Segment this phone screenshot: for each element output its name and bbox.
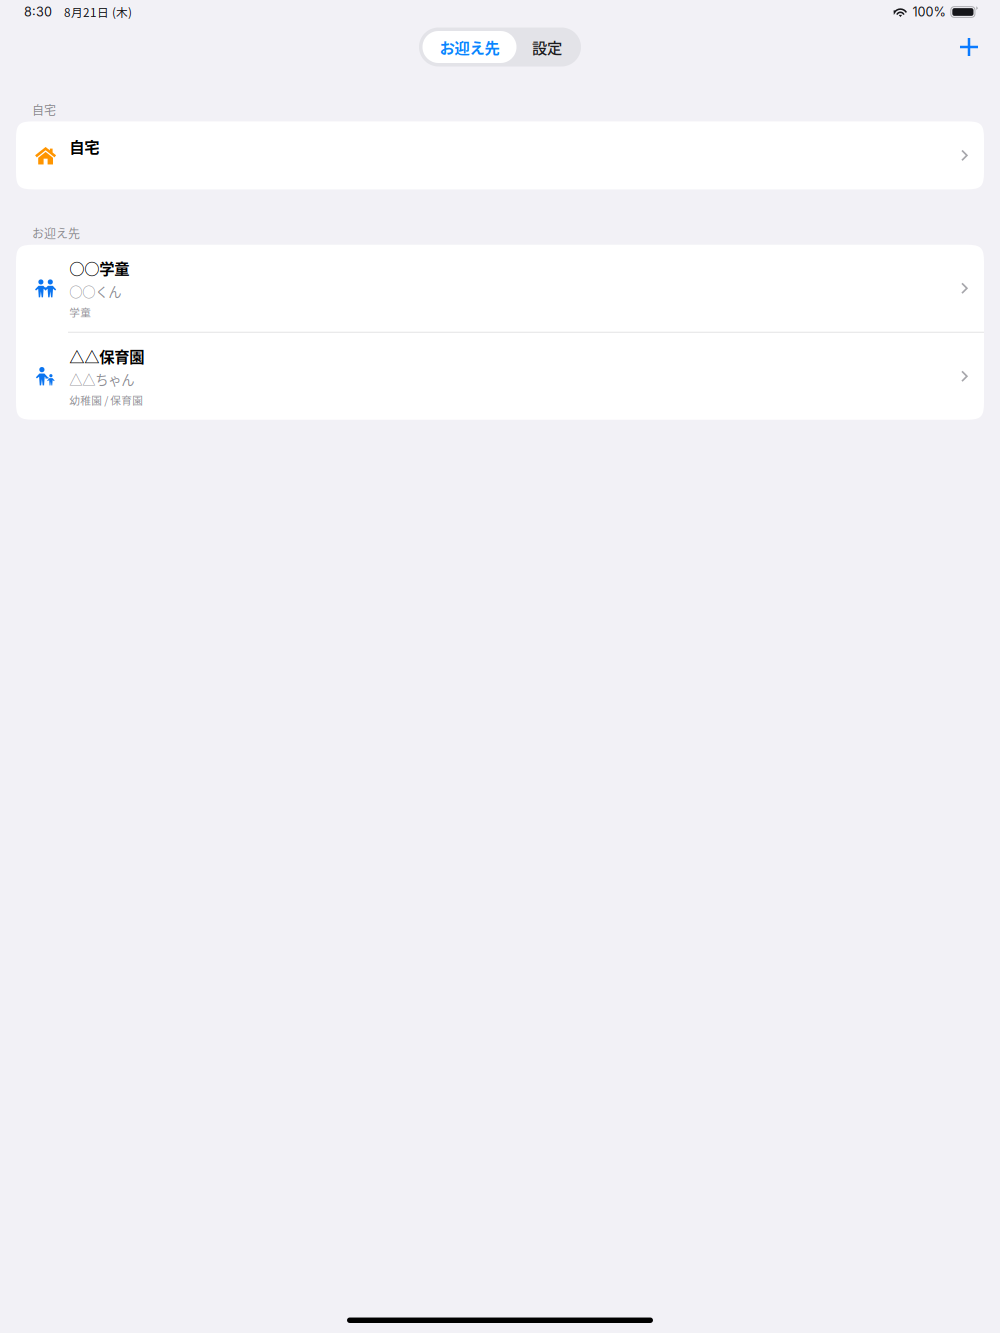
button[interactable]: 追加 (954, 32, 984, 62)
button[interactable]: 自宅 (16, 121, 984, 189)
button[interactable]: ○○学童 (16, 245, 984, 332)
staticText: ○○くん (69, 282, 121, 301)
button[interactable]: お迎え先 (422, 31, 516, 63)
staticText: △△保育園 (69, 345, 144, 367)
staticText: ○○学童 (69, 257, 129, 279)
staticText: 8月21日 (木) (64, 3, 132, 20)
staticText: △△ちゃん (69, 370, 134, 389)
button[interactable]: 設定 (516, 31, 577, 63)
staticText: 設定 (532, 36, 562, 58)
staticText: 幼稚園 / 保育園 (69, 392, 143, 407)
staticText: 8:30 (24, 4, 52, 20)
staticText: お迎え先 (439, 36, 499, 58)
staticText: 100% (912, 4, 945, 20)
staticText: 自宅 (69, 135, 99, 157)
staticText: お迎え先 (32, 224, 80, 242)
button[interactable]: △△保育園 (16, 333, 984, 420)
staticText: 学童 (69, 304, 91, 319)
staticText: 自宅 (32, 101, 56, 118)
